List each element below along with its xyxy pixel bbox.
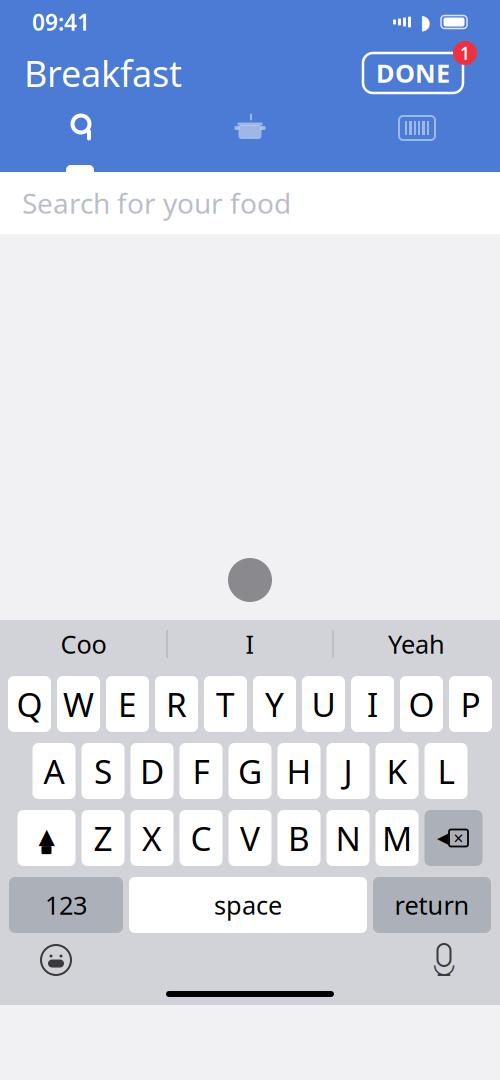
button[interactable]: Coo (0, 620, 166, 668)
button[interactable]: space (129, 877, 367, 933)
button[interactable]: Search for your food (0, 172, 500, 234)
staticText: ▲ (38, 824, 54, 848)
button[interactable]: C (179, 810, 222, 866)
button[interactable]: T (204, 676, 247, 732)
button[interactable]: S (81, 743, 124, 799)
staticText: I (367, 682, 378, 726)
staticText: M (382, 816, 412, 860)
button[interactable]: Recipes (166, 102, 334, 154)
button[interactable]: DONE (350, 48, 476, 98)
staticText: ◗ (420, 11, 431, 33)
staticText: B (288, 816, 310, 860)
button[interactable]: K (375, 743, 418, 799)
button[interactable]: R (155, 676, 198, 732)
button[interactable]: M (375, 810, 418, 866)
button[interactable]: Y (253, 676, 296, 732)
staticText: G (238, 749, 262, 793)
staticText: H (286, 749, 311, 793)
button[interactable]: D (130, 743, 173, 799)
staticText: J (343, 749, 352, 793)
staticText: V (240, 816, 260, 860)
staticText: C (190, 816, 211, 860)
staticText: L (437, 749, 454, 793)
button[interactable]: U (302, 676, 345, 732)
staticText: 1 (460, 41, 470, 64)
staticText: Breakfast (24, 49, 182, 97)
staticText: S (94, 749, 112, 793)
staticText: W (63, 682, 94, 726)
button[interactable]: O (400, 676, 443, 732)
button[interactable]: H (277, 743, 320, 799)
staticText: I (245, 627, 254, 661)
button[interactable]: G (228, 743, 271, 799)
button[interactable]: Scan barcode (334, 102, 500, 154)
staticText: ◀ (437, 830, 448, 846)
button[interactable]: Z (81, 810, 124, 866)
button[interactable]: N (326, 810, 369, 866)
staticText: Yeah (388, 627, 445, 661)
staticText: 123 (45, 888, 87, 922)
staticText: 09:41 (32, 7, 90, 37)
staticText: Coo (60, 627, 106, 661)
button[interactable]: W (57, 676, 100, 732)
button[interactable]: Search (0, 102, 166, 154)
button[interactable]: Dictation (416, 937, 472, 983)
staticText: DONE (376, 56, 450, 90)
staticText: A (43, 749, 64, 793)
staticText: K (386, 749, 407, 793)
staticText: N (335, 816, 360, 860)
button[interactable]: J (326, 743, 369, 799)
staticText: E (118, 682, 137, 726)
staticText: P (460, 682, 480, 726)
staticText: T (216, 682, 235, 726)
button[interactable]: V (228, 810, 271, 866)
button[interactable]: I (351, 676, 394, 732)
staticText: × (453, 826, 463, 849)
button[interactable]: X (130, 810, 173, 866)
button[interactable]: E (106, 676, 149, 732)
staticText: O (408, 682, 434, 726)
button[interactable]: A (32, 743, 75, 799)
button[interactable]: L (424, 743, 467, 799)
button[interactable]: 123 (9, 877, 123, 933)
button[interactable]: Emoji (28, 937, 84, 983)
staticText: R (166, 682, 187, 726)
button[interactable]: Yeah (333, 620, 499, 668)
button[interactable]: return (373, 877, 491, 933)
staticText: F (192, 749, 209, 793)
staticText: space (214, 888, 282, 922)
staticText: D (140, 749, 164, 793)
button[interactable]: B (277, 810, 320, 866)
button[interactable]: I (167, 620, 332, 668)
button[interactable]: Delete (424, 810, 482, 866)
staticText: return (394, 888, 469, 922)
staticText: Z (93, 816, 112, 860)
staticText: Search for your food (22, 184, 291, 222)
staticText: Y (265, 682, 284, 726)
staticText: Q (16, 682, 42, 726)
button[interactable]: P (449, 676, 492, 732)
staticText: ◡ (432, 948, 455, 978)
button[interactable]: Shift (17, 810, 75, 866)
button[interactable]: Q (8, 676, 51, 732)
staticText: U (311, 682, 335, 726)
staticText: X (142, 816, 162, 860)
button[interactable]: F (179, 743, 222, 799)
